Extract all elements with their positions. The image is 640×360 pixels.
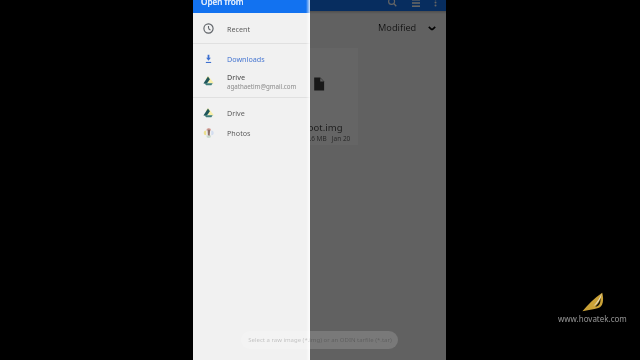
staticText: www.hovatek.com <box>558 313 627 324</box>
staticText: Downloads <box>227 54 265 64</box>
button[interactable]: More options <box>428 0 442 8</box>
staticText: Open from <box>201 0 244 7</box>
staticText: Drive <box>227 108 245 118</box>
button[interactable]: boot.img <box>284 48 358 145</box>
staticText: Modified <box>378 21 417 34</box>
staticText: Photos <box>227 128 251 138</box>
staticText: boot.img <box>302 121 343 134</box>
button[interactable]: Recent <box>193 19 310 38</box>
button[interactable]: Search <box>385 0 400 8</box>
button[interactable]: Downloads <box>193 49 310 68</box>
button[interactable]: Switch view <box>408 0 423 8</box>
button[interactable]: Drive <box>193 103 310 122</box>
staticText: Select a raw image (*.img) or an ODIN ta… <box>248 336 392 344</box>
staticText: 14.6 MB Jan 20 <box>302 134 351 143</box>
button[interactable]: Photos <box>193 123 310 142</box>
staticText: Recent <box>227 24 251 34</box>
staticText: Drive <box>227 72 246 82</box>
button[interactable]: Modified <box>376 18 439 37</box>
button[interactable]: Drive <box>193 71 310 90</box>
staticText: agathaetim@gmail.com <box>227 82 297 90</box>
